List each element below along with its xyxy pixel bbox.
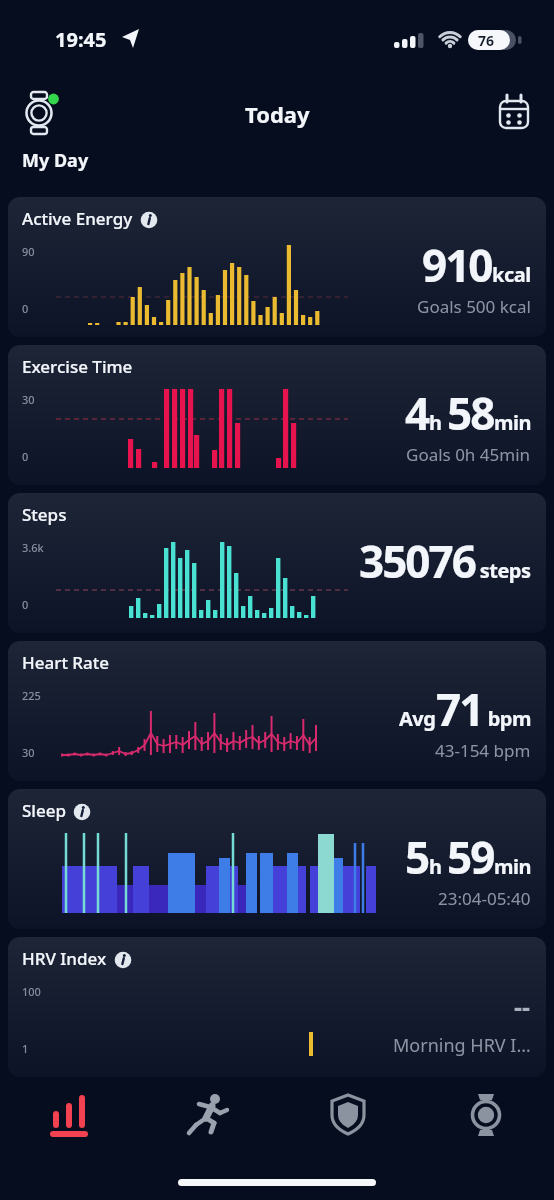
staticText: 0 <box>22 597 29 612</box>
staticText: HRV Index <box>22 947 107 970</box>
staticText: Today <box>245 99 310 129</box>
staticText: 71 <box>436 679 483 739</box>
staticText: Goals 0h 45min <box>406 443 531 466</box>
button[interactable] <box>278 1080 417 1150</box>
button[interactable]: Sleep <box>8 789 546 929</box>
button[interactable] <box>139 1080 278 1150</box>
staticText: My Day <box>22 148 89 173</box>
staticText: 43-154 bpm <box>435 739 531 762</box>
staticText: 23:04-05:40 <box>438 887 531 910</box>
staticText: 100 <box>22 984 41 999</box>
staticText: 225 <box>22 688 41 703</box>
staticText: 19:45 <box>55 26 107 53</box>
staticText: Avg <box>399 705 436 732</box>
staticText: 1 <box>22 1041 29 1056</box>
button[interactable] <box>417 1080 554 1150</box>
staticText: 0 <box>22 301 29 316</box>
staticText: 3.6k <box>22 540 44 555</box>
staticText: 59 <box>447 827 494 887</box>
staticText: Sleep <box>22 799 66 822</box>
staticText: steps <box>475 557 531 584</box>
staticText: kcal <box>492 261 531 288</box>
staticText: 58 <box>447 383 494 443</box>
staticText: 90 <box>22 244 35 259</box>
staticText: -- <box>514 989 531 1023</box>
button[interactable]: HRV Index <box>8 937 546 1077</box>
button[interactable]: Active Energy <box>8 197 546 337</box>
button[interactable]: Heart Rate <box>8 641 546 781</box>
staticText: 30 <box>22 392 35 407</box>
staticText: h <box>429 853 447 880</box>
staticText: Heart Rate <box>22 651 110 674</box>
staticText: 76 <box>478 31 495 50</box>
staticText: min <box>494 409 531 436</box>
button[interactable] <box>22 89 62 137</box>
staticText: min <box>494 853 531 880</box>
staticText: Steps <box>22 503 67 526</box>
staticText: 35076 <box>359 531 475 591</box>
staticText: Goals 500 kcal <box>417 295 531 318</box>
staticText: bpm <box>483 705 531 732</box>
button[interactable] <box>0 1080 139 1150</box>
staticText: h <box>429 409 447 436</box>
staticText: 910 <box>422 235 492 295</box>
staticText: 30 <box>22 745 35 760</box>
staticText: 4 <box>405 383 429 443</box>
staticText: Active Energy <box>22 207 133 230</box>
staticText: 0 <box>22 449 29 464</box>
staticText: 5 <box>405 827 429 887</box>
button[interactable]: Steps <box>8 493 546 633</box>
staticText: Exercise Time <box>22 355 133 378</box>
button[interactable]: Exercise Time <box>8 345 546 485</box>
staticText: Morning HRV I… <box>393 1033 531 1058</box>
button[interactable] <box>496 93 532 131</box>
